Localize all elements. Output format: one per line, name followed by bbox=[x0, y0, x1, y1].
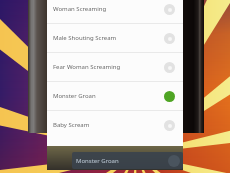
staticText: Monster Groan bbox=[53, 92, 164, 100]
button[interactable]: Fear Woman Screaming bbox=[47, 53, 183, 81]
button[interactable]: Male Shouting Scream bbox=[47, 24, 183, 52]
button[interactable]: Monster Groan bbox=[72, 152, 183, 169]
staticText: Monster Groan bbox=[76, 157, 168, 165]
staticText: Woman Screaming bbox=[53, 5, 164, 13]
staticText: Male Shouting Scream bbox=[53, 34, 164, 42]
button[interactable]: Baby Scream bbox=[47, 111, 183, 139]
button[interactable]: Woman Screaming bbox=[47, 0, 183, 23]
staticText: Baby Scream bbox=[53, 121, 164, 129]
button[interactable]: Monster Groan bbox=[47, 82, 183, 110]
staticText: Fear Woman Screaming bbox=[53, 63, 164, 71]
